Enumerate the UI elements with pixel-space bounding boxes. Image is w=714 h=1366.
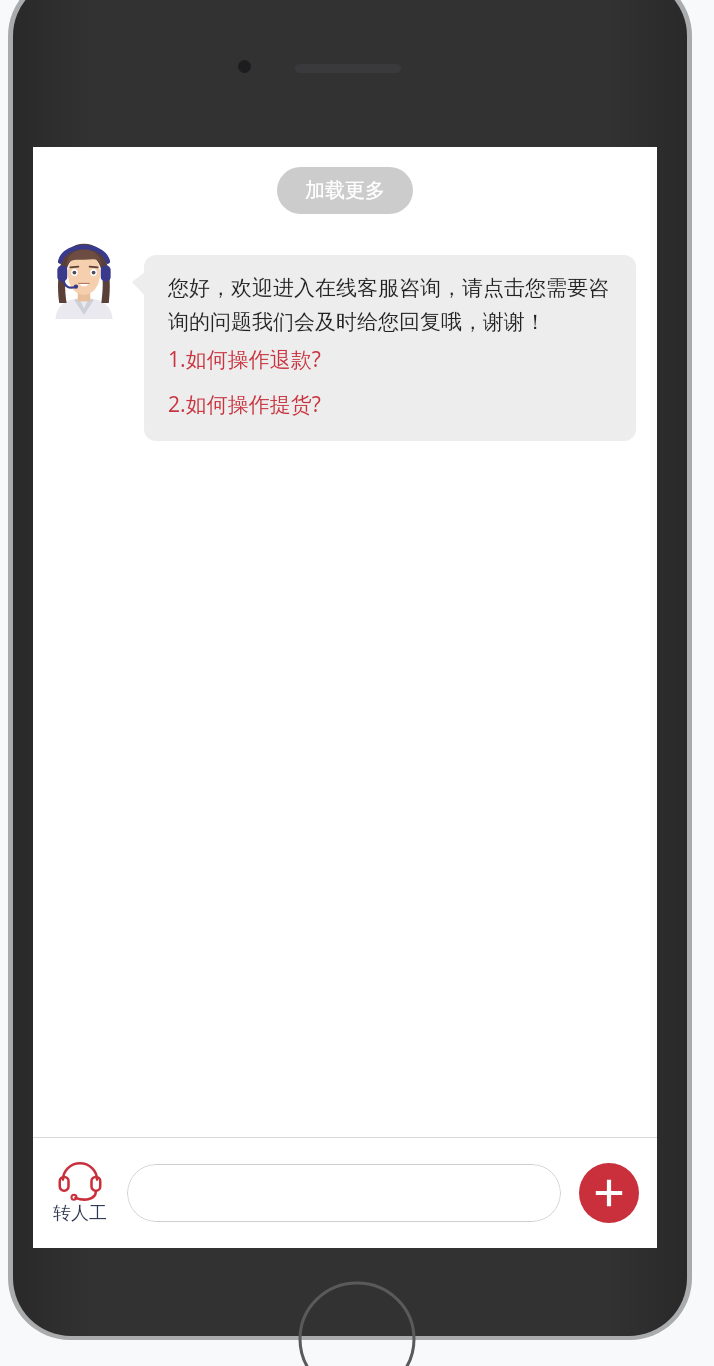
button[interactable]: More options	[579, 1163, 639, 1223]
button[interactable]: 2.如何操作提货?	[168, 390, 321, 419]
staticText: 您好，欢迎进入在线客服咨询，请点击您需要咨询的问题我们会及时给您回复哦，谢谢！	[168, 275, 618, 335]
button[interactable]: 您好，欢迎进入在线客服咨询，请点击您需要咨询的问题我们会及时给您回复哦，谢谢！	[144, 255, 636, 441]
staticText: 转人工	[53, 1202, 107, 1225]
button[interactable]: Message input	[127, 1164, 561, 1222]
staticText: 1.如何操作退款?	[168, 345, 321, 374]
staticText: 2.如何操作提货?	[168, 390, 321, 419]
staticText: 加载更多	[305, 178, 385, 203]
button[interactable]: 转人工	[47, 1157, 113, 1229]
button[interactable]: 1.如何操作退款?	[168, 345, 321, 374]
button[interactable]: 加载更多	[277, 167, 413, 214]
